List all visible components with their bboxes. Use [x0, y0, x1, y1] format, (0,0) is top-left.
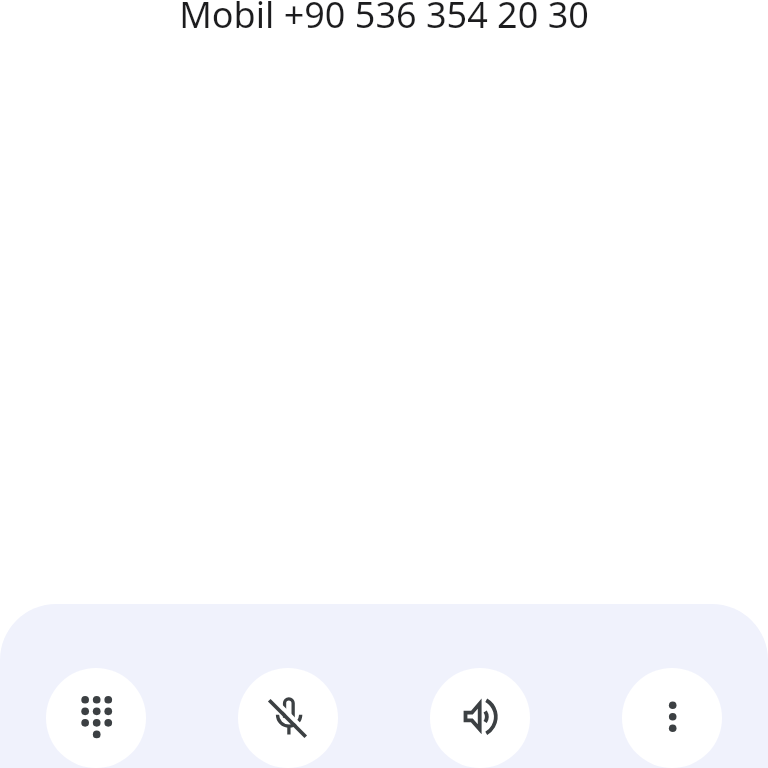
staticText: Mobil +90 536 354 20 30	[0, 0, 768, 39]
button[interactable]: Dialpad	[46, 668, 146, 768]
button[interactable]: Mute	[238, 668, 338, 768]
button[interactable]: Speaker	[430, 668, 530, 768]
button[interactable]: More options	[622, 668, 722, 768]
